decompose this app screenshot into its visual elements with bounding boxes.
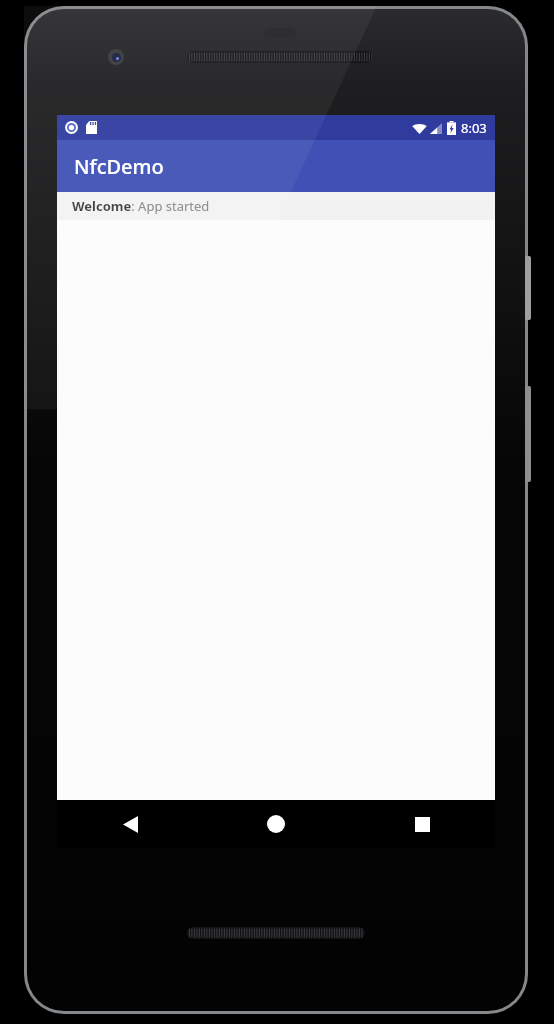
button[interactable]: Recent apps	[349, 800, 495, 848]
button[interactable]: Back	[57, 800, 203, 848]
staticText: NfcDemo	[74, 153, 164, 180]
staticText: Welcome: App started	[72, 197, 210, 215]
button[interactable]: Welcome: App started	[57, 192, 495, 220]
button[interactable]: NfcDemo	[57, 140, 495, 192]
button[interactable]: Home	[203, 800, 349, 848]
staticText: 8:03	[461, 119, 487, 137]
